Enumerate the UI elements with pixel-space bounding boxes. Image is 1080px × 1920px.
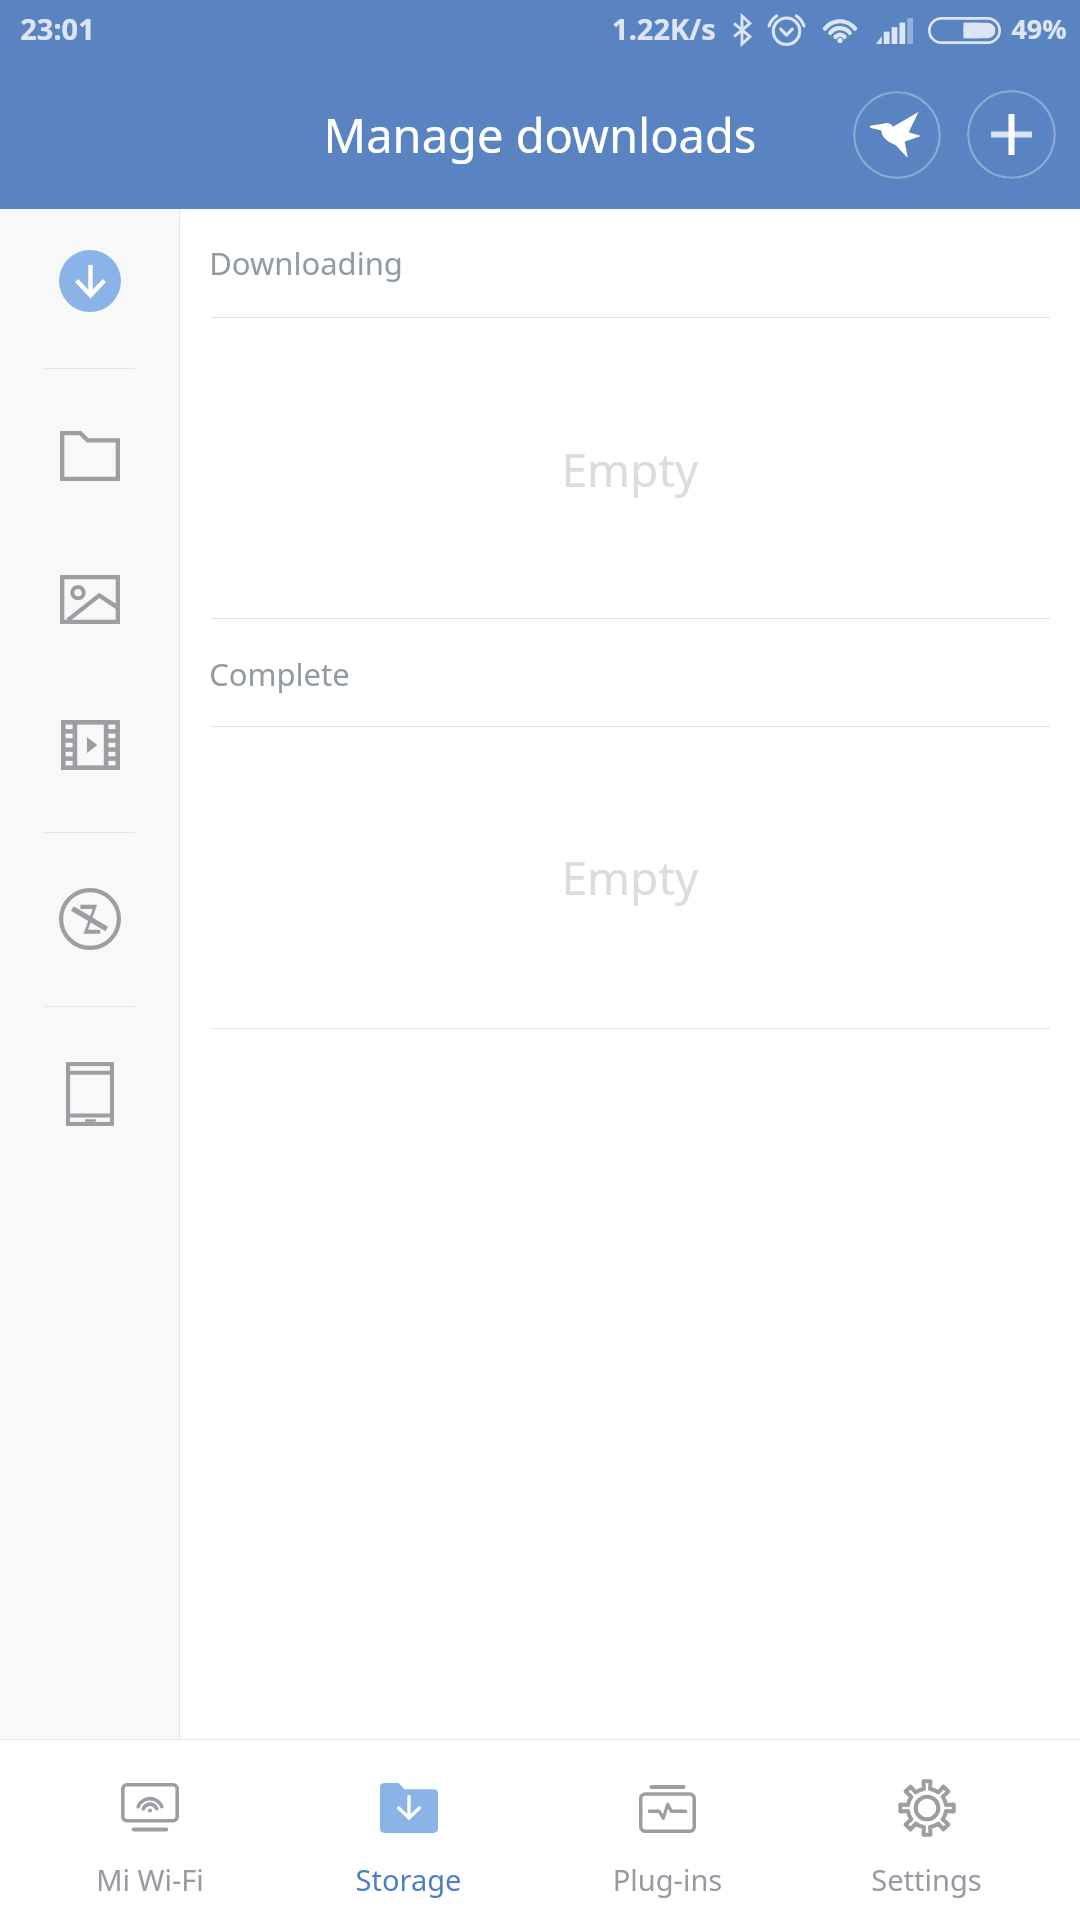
button[interactable]: Documents: [35, 431, 145, 481]
staticText: Manage downloads: [0, 103, 1080, 167]
staticText: 23:01: [20, 9, 95, 48]
staticText: Complete: [209, 653, 350, 695]
button[interactable]: Accelerate download: [853, 91, 941, 179]
staticText: Plug-ins: [538, 1860, 797, 1899]
staticText: Mi Wi-Fi: [21, 1860, 279, 1899]
staticText: 1.22K/s: [612, 9, 716, 48]
button[interactable]: Mi Wi-Fi: [21, 1740, 279, 1920]
staticText: Settings: [797, 1860, 1056, 1899]
staticText: Empty: [180, 846, 1080, 909]
staticText: Downloading: [209, 242, 403, 284]
button[interactable]: All downloads: [59, 250, 121, 312]
button[interactable]: Storage: [279, 1740, 538, 1920]
button[interactable]: Add download: [967, 90, 1056, 179]
button[interactable]: Settings: [797, 1740, 1056, 1920]
button[interactable]: Unknown files: [35, 888, 145, 950]
staticText: Empty: [180, 438, 1080, 501]
button[interactable]: Videos: [35, 720, 145, 770]
staticText: Storage: [279, 1860, 538, 1899]
button[interactable]: Images: [35, 575, 145, 624]
staticText: 49%: [1011, 10, 1067, 47]
button[interactable]: Apps: [35, 1062, 145, 1126]
button[interactable]: Plug-ins: [538, 1740, 797, 1920]
